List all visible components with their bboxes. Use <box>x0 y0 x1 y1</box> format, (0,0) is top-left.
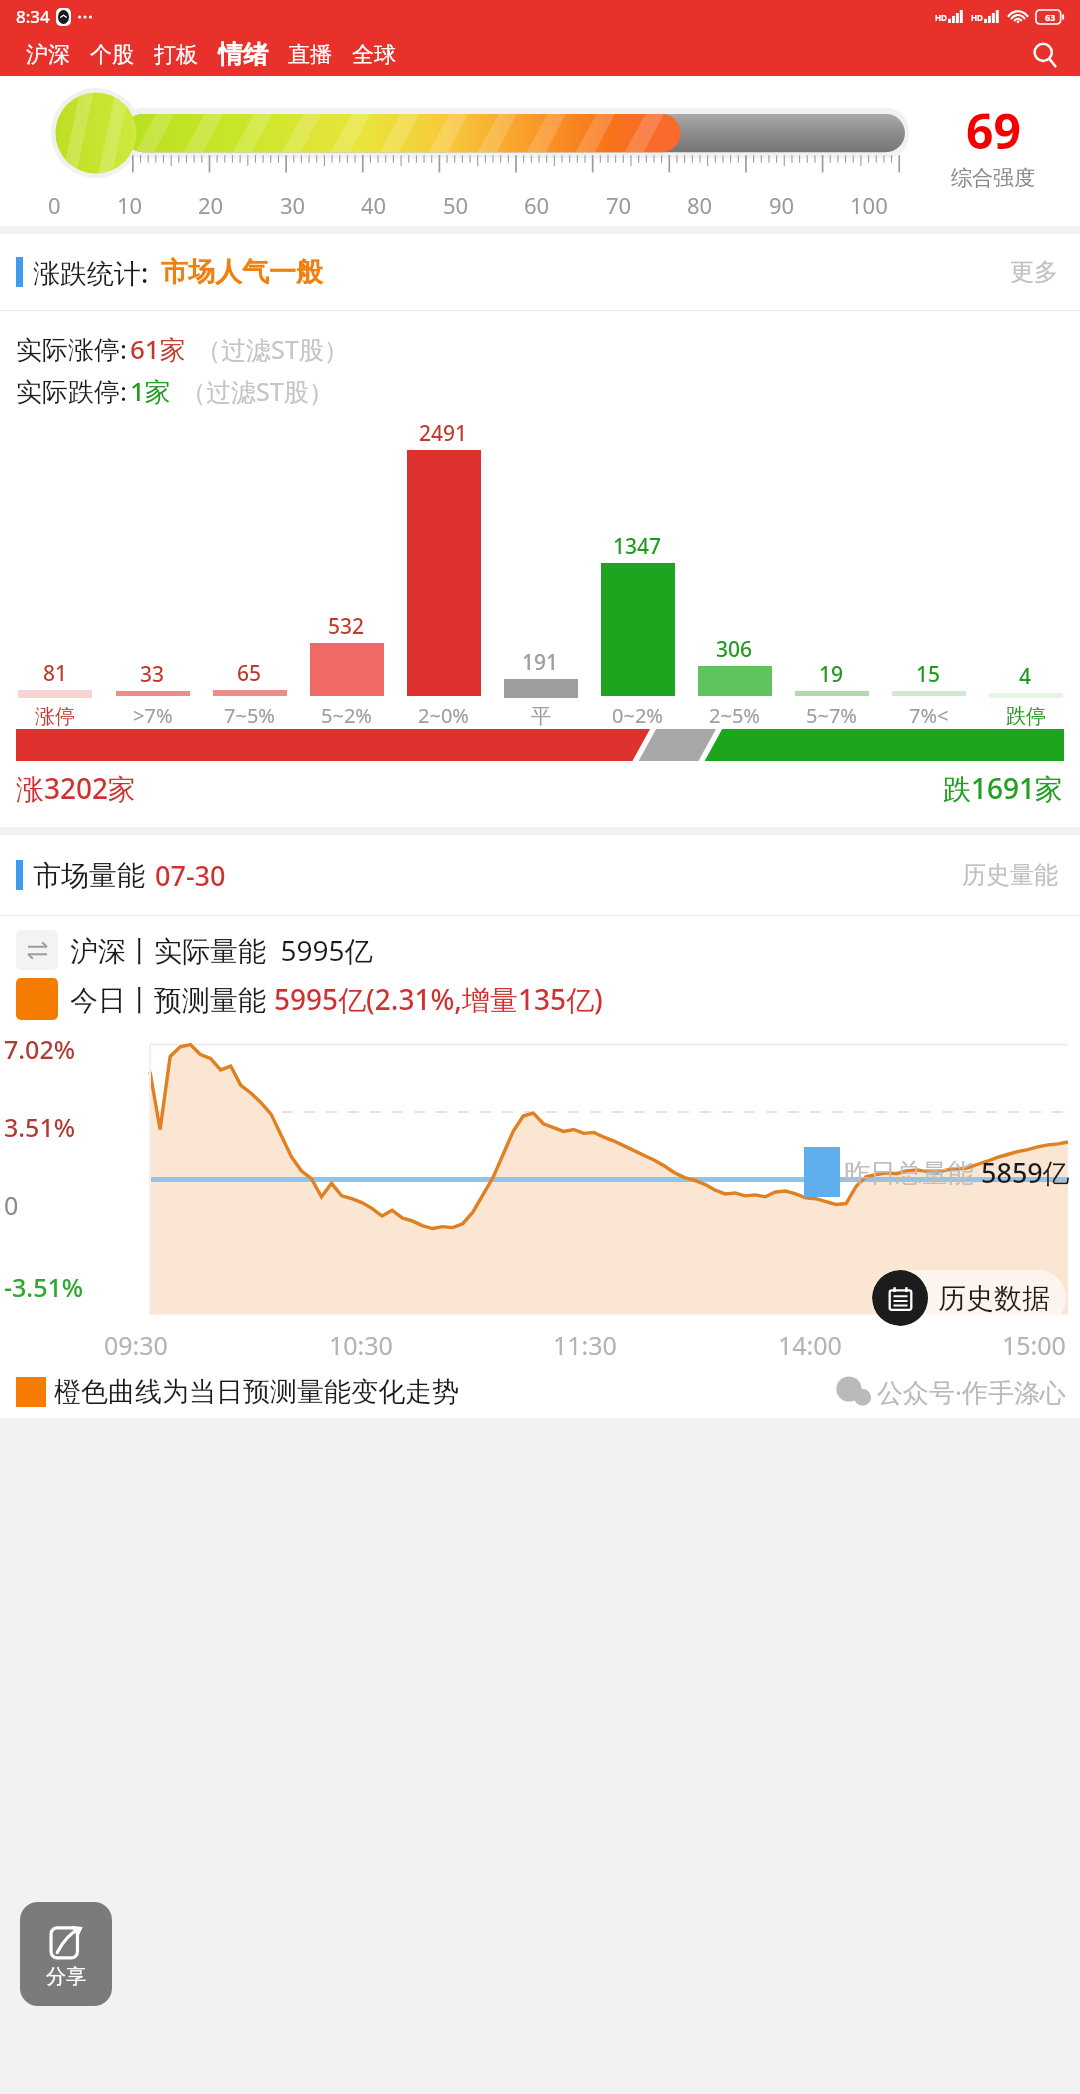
staticText: 0 <box>4 1188 19 1222</box>
staticText: 实际涨停: <box>16 331 127 367</box>
staticText: 涨跌统计: <box>33 254 149 291</box>
staticText: 100 <box>850 190 888 220</box>
button[interactable]: 沪深 <box>16 37 80 73</box>
staticText: 市场量能 <box>33 858 145 893</box>
staticText: 33 <box>140 660 165 689</box>
staticText: 40 <box>361 190 387 220</box>
staticText: -3.51% <box>4 1270 84 1304</box>
staticText: 情绪 <box>218 39 268 70</box>
button[interactable]: 打板 <box>144 37 208 73</box>
staticText: 19 <box>819 660 844 689</box>
staticText: 1家 <box>130 373 171 409</box>
staticText: 80 <box>687 190 713 220</box>
button[interactable]: 搜索 <box>1022 33 1068 76</box>
staticText: 2~0% <box>418 702 469 729</box>
staticText: 81 <box>43 659 68 688</box>
button[interactable]: 分享 <box>20 1902 112 2006</box>
staticText: 07-30 <box>155 857 226 894</box>
staticText: 69 <box>966 98 1021 163</box>
staticText: 7.02% <box>4 1032 76 1066</box>
staticText: 15:00 <box>1002 1328 1066 1362</box>
staticText: 今日丨预测量能 <box>70 980 274 1018</box>
staticText: 昨日总量能 <box>844 1154 981 1190</box>
staticText: 50 <box>443 190 469 220</box>
staticText: 1347 <box>613 532 662 561</box>
staticText: 5~7% <box>806 702 857 729</box>
staticText: 跌1691家 <box>943 769 1064 807</box>
button[interactable]: 全球 <box>342 37 406 73</box>
button[interactable]: 历史数据 <box>872 1270 1066 1326</box>
staticText: 沪深丨实际量能 5995亿 <box>70 931 373 969</box>
staticText: 5859亿 <box>981 1154 1070 1191</box>
staticText: 30 <box>280 190 306 220</box>
staticText: 90 <box>769 190 795 220</box>
staticText: 历史数据 <box>938 1281 1050 1316</box>
staticText: 跌停 <box>1006 704 1046 729</box>
staticText: 沪深 <box>26 41 70 69</box>
staticText: 0 <box>48 190 61 220</box>
staticText: 涨停 <box>35 704 75 729</box>
staticText: 60 <box>524 190 550 220</box>
button[interactable]: 涨跌统计: <box>0 234 1080 310</box>
staticText: 10:30 <box>329 1328 393 1362</box>
staticText: >7% <box>133 702 173 729</box>
button[interactable]: 个股 <box>80 37 144 73</box>
staticText: 70 <box>606 190 632 220</box>
staticText: 市场人气一般 <box>161 255 323 289</box>
staticText: 公众号·作手涤心 <box>877 1374 1066 1410</box>
staticText: 4 <box>1019 662 1032 691</box>
staticText: 综合强度 <box>951 165 1035 191</box>
staticText: 20 <box>198 190 224 220</box>
staticText: 打板 <box>154 41 198 69</box>
staticText: 09:30 <box>104 1328 168 1362</box>
staticText: 2491 <box>419 419 468 448</box>
staticText: 63 <box>1045 11 1056 23</box>
staticText: 532 <box>328 612 365 641</box>
staticText: 全球 <box>352 41 396 69</box>
staticText: 191 <box>522 648 559 677</box>
button[interactable]: 情绪 <box>208 35 278 74</box>
staticText: 0~2% <box>612 702 663 729</box>
staticText: （过滤ST股） <box>181 374 334 408</box>
staticText: 更多 <box>1010 257 1058 287</box>
staticText: 65 <box>237 659 262 688</box>
staticText: 5995亿(2.31%,增量135亿) <box>274 980 603 1018</box>
staticText: 11:30 <box>553 1328 617 1362</box>
staticText: 15 <box>916 660 941 689</box>
staticText: 历史量能 <box>962 860 1058 890</box>
staticText: 306 <box>716 635 753 664</box>
staticText: 平 <box>531 704 551 729</box>
button[interactable]: 市场量能 <box>0 835 1080 915</box>
staticText: 个股 <box>90 41 134 69</box>
staticText: 直播 <box>288 41 332 69</box>
staticText: （过滤ST股） <box>196 332 349 366</box>
staticText: 分享 <box>46 1964 86 1989</box>
staticText: 7~5% <box>224 702 275 729</box>
button[interactable]: 直播 <box>278 37 342 73</box>
staticText: HD <box>971 12 983 23</box>
staticText: 5~2% <box>321 702 372 729</box>
staticText: 61家 <box>130 331 186 367</box>
staticText: 10 <box>117 190 143 220</box>
staticText: 7%< <box>909 702 949 729</box>
staticText: 实际跌停: <box>16 373 127 409</box>
staticText: HD <box>935 12 947 23</box>
staticText: 14:00 <box>778 1328 842 1362</box>
staticText: 涨3202家 <box>16 769 137 807</box>
staticText: 3.51% <box>4 1110 76 1144</box>
staticText: 橙色曲线为当日预测量能变化走势 <box>54 1375 459 1409</box>
staticText: 2~5% <box>709 702 760 729</box>
staticText: 8:34 <box>16 5 50 28</box>
